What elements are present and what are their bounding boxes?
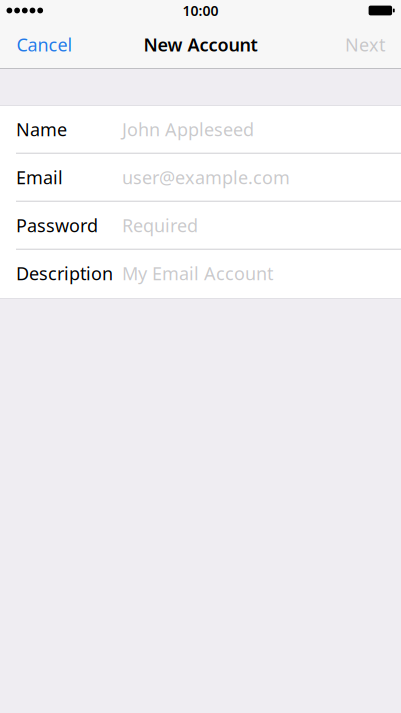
- button[interactable]: Name: [0, 106, 401, 154]
- staticText: Email: [16, 165, 63, 189]
- staticText: Password: [16, 213, 98, 237]
- staticText: New Account: [143, 32, 257, 56]
- staticText: Name: [16, 117, 67, 141]
- staticText: 10:00: [182, 1, 218, 20]
- button[interactable]: Email: [0, 154, 401, 202]
- staticText: My Email Account: [122, 261, 273, 285]
- button[interactable]: Next: [335, 21, 401, 68]
- staticText: Description: [16, 261, 113, 285]
- button[interactable]: Cancel: [0, 21, 82, 68]
- button[interactable]: Description: [0, 250, 401, 298]
- staticText: Required: [122, 213, 198, 237]
- staticText: user@example.com: [122, 165, 290, 189]
- staticText: John Appleseed: [122, 117, 254, 141]
- button[interactable]: Password: [0, 202, 401, 250]
- staticText: Next: [345, 32, 385, 56]
- staticText: Cancel: [16, 32, 72, 56]
